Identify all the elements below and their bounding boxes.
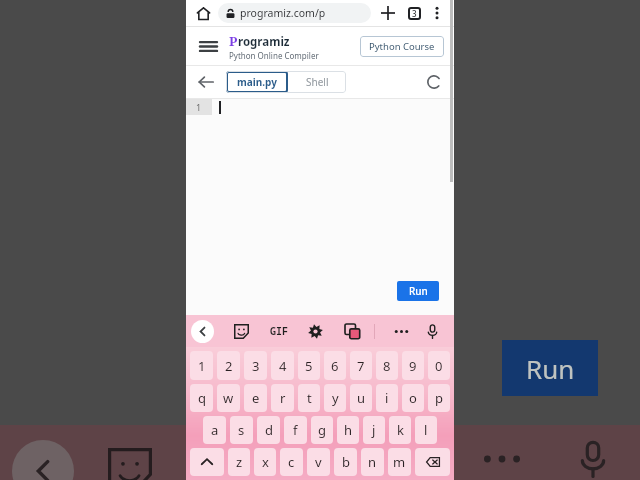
button[interactable]: Back [12,440,74,480]
button[interactable]: l [415,416,437,444]
staticText: s [238,421,245,439]
staticText: i [385,389,389,407]
staticText: P [229,32,238,50]
button[interactable]: i [376,384,398,412]
staticText: m [393,453,406,471]
button[interactable]: f [284,416,307,444]
button[interactable]: 8 [376,351,398,380]
button[interactable]: main.py [226,71,288,93]
staticText: l [424,421,428,439]
staticText: x [262,453,269,471]
staticText: 8 [383,357,391,375]
staticText: 1 [196,101,202,113]
button[interactable]: programiz.com/p [218,3,371,23]
button[interactable]: t [298,384,320,412]
button[interactable]: New tab [378,3,398,23]
button[interactable]: 0 [428,351,450,380]
staticText: Python Online Compiler [229,50,319,61]
button[interactable]: q [190,384,213,412]
staticText: Run [526,351,575,386]
button[interactable]: 1 [190,351,213,380]
button[interactable]: Stickers [228,318,254,344]
button[interactable]: r [271,384,294,412]
button[interactable]: 3 [244,351,267,380]
staticText: g [318,421,326,439]
button[interactable]: Translate [339,318,365,344]
staticText: 4 [279,357,287,375]
staticText: 0 [435,357,443,375]
staticText: Run [409,284,428,298]
button[interactable]: 5 [298,351,320,380]
staticText: y [332,389,339,407]
staticText: Python Course [369,40,435,53]
button[interactable]: 7 [350,351,372,380]
button[interactable]: Settings [302,318,328,344]
staticText: h [344,421,353,439]
button[interactable]: c [280,448,303,476]
button[interactable]: x [254,448,276,476]
staticText: r [280,389,286,407]
button[interactable]: More options [427,3,447,23]
button[interactable]: y [324,384,346,412]
button[interactable]: Dark mode [422,70,446,94]
button[interactable]: 4 [271,351,294,380]
button[interactable]: Home [193,3,213,23]
staticText: 2 [225,357,233,375]
button[interactable]: g [311,416,333,444]
staticText: GIF [270,324,288,338]
button[interactable]: a [203,416,226,444]
button[interactable]: Menu [196,34,220,58]
button[interactable]: u [350,384,372,412]
button[interactable]: Stickers [108,448,152,480]
staticText: 3 [412,8,417,19]
button[interactable]: d [257,416,280,444]
button[interactable]: v [307,448,330,476]
button[interactable]: GIF [265,317,293,345]
staticText: 1 [198,357,206,375]
staticText: rogramiz [238,34,290,50]
button[interactable]: m [388,448,411,476]
button[interactable]: e [244,384,267,412]
button[interactable]: Voice input [574,440,612,478]
staticText: main.py [237,75,277,89]
staticText: o [409,389,417,407]
button[interactable]: k [389,416,411,444]
staticText: programiz.com/p [240,6,326,20]
button[interactable]: 9 [402,351,424,380]
staticText: 5 [305,357,313,375]
button[interactable]: b [334,448,357,476]
button[interactable]: w [217,384,240,412]
button[interactable]: Shell [288,71,346,93]
button[interactable]: Backspace [415,448,450,476]
staticText: q [198,389,206,407]
button[interactable]: Python Course [360,36,444,57]
staticText: w [223,389,234,407]
button[interactable]: Run [502,340,598,396]
button[interactable]: o [402,384,424,412]
staticText: p [435,389,443,407]
button[interactable]: 2 [217,351,240,380]
staticText: z [236,453,243,471]
button[interactable]: More [484,452,520,466]
button[interactable]: Run [397,281,439,301]
staticText: e [252,389,260,407]
button[interactable]: Collapse toolbar [191,320,214,343]
staticText: j [372,421,376,439]
button[interactable]: n [361,448,384,476]
button[interactable]: Shift [190,448,224,476]
button[interactable]: s [230,416,253,444]
button[interactable]: 6 [324,351,346,380]
staticText: n [368,453,377,471]
button[interactable]: z [228,448,250,476]
button[interactable]: p [428,384,450,412]
staticText: Shell [306,75,329,89]
button[interactable]: Tabs, 3 open [404,3,424,23]
button[interactable]: Back [194,70,218,94]
staticText: 3 [252,357,260,375]
button[interactable]: More [388,318,414,344]
button[interactable]: j [363,416,385,444]
button[interactable]: Voice input [419,318,445,344]
staticText: d [265,421,273,439]
button[interactable]: h [337,416,359,444]
staticText: b [342,453,350,471]
